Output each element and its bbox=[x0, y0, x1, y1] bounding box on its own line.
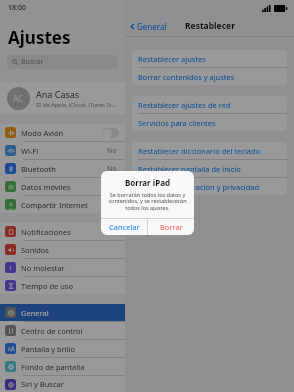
staticText: Siri y Buscar bbox=[21, 379, 119, 389]
staticText: Borrar iPad bbox=[101, 177, 194, 188]
button[interactable]: Modo Avión bbox=[102, 128, 119, 138]
button[interactable]: Pantalla y brillo bbox=[0, 340, 125, 357]
button[interactable]: Restablecer pantalla de inicio bbox=[132, 160, 287, 177]
staticText: Borrar contenidos y ajustes bbox=[138, 72, 235, 82]
button[interactable]: General bbox=[129, 21, 167, 32]
staticText: No bbox=[107, 146, 117, 156]
staticText: Restablecer ajustes bbox=[138, 54, 206, 64]
staticText: ID de Apple, iCloud, iTunes Store… bbox=[36, 101, 118, 108]
button[interactable]: No molestar bbox=[0, 259, 125, 276]
button[interactable]: Restablecer ajustes bbox=[132, 50, 287, 67]
button[interactable]: Wi-Fi bbox=[0, 142, 125, 159]
button[interactable]: Fondo de pantalla bbox=[0, 358, 125, 375]
staticText: Wi-Fi bbox=[21, 146, 107, 156]
staticText: Centro de control bbox=[21, 326, 119, 336]
button[interactable]: Borrar contenidos y ajustes bbox=[132, 68, 287, 85]
button[interactable]: Borrar bbox=[148, 219, 194, 235]
staticText: Restablecer ubicación y privacidad bbox=[138, 182, 260, 192]
staticText: Ajustes bbox=[8, 26, 71, 49]
button[interactable]: Restablecer ajustes de red bbox=[132, 96, 287, 113]
staticText: Se borrarán todos los datos y contenidos… bbox=[108, 191, 187, 212]
staticText: Datos móviles bbox=[21, 182, 119, 192]
staticText: Cancelar bbox=[109, 222, 140, 232]
button[interactable]: Tiempo de uso bbox=[0, 277, 125, 294]
staticText: General bbox=[137, 21, 167, 32]
button[interactable]: Notificaciones bbox=[0, 223, 125, 240]
staticText: Fondo de pantalla bbox=[21, 362, 119, 372]
staticText: Borrar bbox=[160, 222, 183, 232]
staticText: No bbox=[107, 164, 117, 174]
button[interactable]: Sonidos bbox=[0, 241, 125, 258]
button[interactable]: Buscar bbox=[7, 55, 118, 69]
staticText: Pantalla y brillo bbox=[21, 344, 119, 354]
button[interactable]: General bbox=[0, 304, 125, 321]
staticText: Restablecer ajustes de red bbox=[138, 100, 231, 110]
staticText: Notificaciones bbox=[21, 227, 119, 237]
staticText: Restablecer diccionario del teclado bbox=[138, 146, 261, 156]
staticText: Tiempo de uso bbox=[21, 281, 119, 291]
staticText: Buscar bbox=[21, 57, 44, 67]
staticText: Bluetooth bbox=[21, 164, 107, 174]
staticText: Modo Avión bbox=[21, 128, 102, 138]
staticText: Compartir Internet bbox=[21, 200, 119, 210]
button[interactable]: Servicios para clientes bbox=[132, 114, 287, 131]
button[interactable]: Restablecer ubicación y privacidad bbox=[132, 178, 287, 195]
staticText: Ana Casas bbox=[36, 88, 80, 100]
staticText: No molestar bbox=[21, 263, 119, 273]
button[interactable]: Compartir Internet bbox=[0, 196, 125, 213]
button[interactable]: Datos móviles bbox=[0, 178, 125, 195]
button[interactable]: Restablecer diccionario del teclado bbox=[132, 142, 287, 159]
button[interactable]: Bluetooth bbox=[0, 160, 125, 177]
button[interactable]: Cancelar bbox=[101, 219, 147, 235]
staticText: AC bbox=[13, 93, 24, 104]
button[interactable]: Centro de control bbox=[0, 322, 125, 339]
button[interactable]: Siri y Buscar bbox=[0, 376, 125, 392]
staticText: Servicios para clientes bbox=[138, 118, 216, 128]
staticText: 18:00 bbox=[8, 3, 26, 13]
staticText: Sonidos bbox=[21, 245, 119, 255]
staticText: General bbox=[21, 308, 119, 318]
staticText: Restablecer pantalla de inicio bbox=[138, 164, 241, 174]
button[interactable]: AC bbox=[0, 82, 125, 114]
button[interactable]: Modo Avión bbox=[0, 124, 125, 141]
staticText: Restablecer bbox=[185, 20, 235, 32]
